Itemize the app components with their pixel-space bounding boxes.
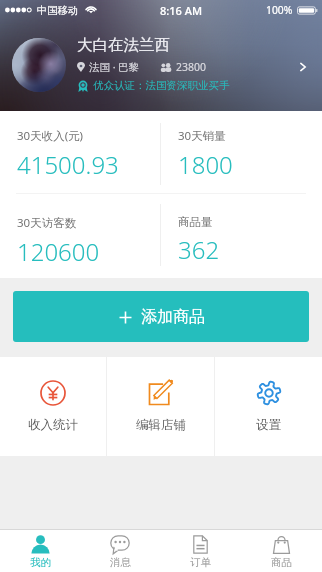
button[interactable]: 添加商品 bbox=[13, 291, 309, 342]
button[interactable]: 商品 bbox=[241, 530, 322, 572]
button[interactable]: 订单 bbox=[160, 530, 241, 572]
staticText: 23800 bbox=[176, 60, 207, 74]
staticText: 编辑店铺 bbox=[136, 417, 186, 433]
staticText: 商品量 bbox=[178, 215, 213, 229]
button[interactable]: 30天销量 bbox=[161, 111, 322, 193]
staticText: 收入统计 bbox=[28, 417, 78, 433]
staticText: 30天访客数 bbox=[17, 215, 77, 231]
staticText: 优众认证：法国资深职业买手 bbox=[93, 79, 230, 92]
other: Profile photo bbox=[12, 38, 66, 92]
staticText: 订单 bbox=[190, 556, 211, 569]
button[interactable]: Profile photo bbox=[0, 22, 322, 111]
button[interactable]: 编辑店铺 bbox=[107, 357, 214, 456]
staticText: 设置 bbox=[256, 417, 281, 433]
staticText: 362 bbox=[178, 233, 220, 266]
staticText: 30天销量 bbox=[178, 128, 226, 144]
other: Open profile bbox=[294, 58, 312, 76]
button[interactable]: 我的 bbox=[0, 530, 80, 572]
staticText: 大白在法兰西 bbox=[77, 35, 170, 55]
staticText: 商品 bbox=[271, 556, 292, 569]
staticText: 41500.93 bbox=[17, 148, 119, 181]
staticText: 消息 bbox=[110, 556, 131, 569]
button[interactable]: 30天访客数 bbox=[0, 194, 160, 278]
button[interactable]: 商品量 bbox=[161, 194, 322, 278]
staticText: 30天收入(元) bbox=[17, 128, 84, 144]
staticText: 添加商品 bbox=[141, 307, 205, 327]
button[interactable]: 收入统计 bbox=[0, 357, 106, 456]
staticText: 中国移动 bbox=[37, 4, 79, 17]
staticText: 1800 bbox=[178, 148, 233, 181]
staticText: 100% bbox=[266, 3, 293, 17]
button[interactable]: 设置 bbox=[215, 357, 322, 456]
button[interactable]: 30天收入(元) bbox=[0, 111, 160, 193]
staticText: 120600 bbox=[17, 235, 100, 268]
staticText: 8:16 AM bbox=[160, 3, 203, 18]
staticText: 法国 · 巴黎 bbox=[89, 60, 140, 74]
button[interactable]: 消息 bbox=[80, 530, 160, 572]
staticText: 我的 bbox=[30, 556, 51, 569]
